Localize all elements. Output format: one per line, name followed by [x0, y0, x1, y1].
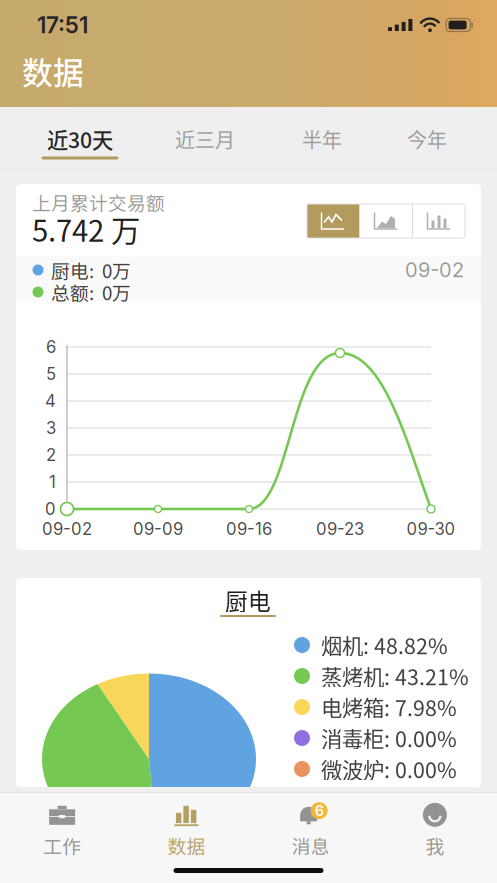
- staticText: 17:51: [37, 11, 88, 39]
- staticText: 电烤箱: 7.98%: [321, 692, 457, 722]
- staticText: 09-02: [405, 258, 464, 282]
- staticText: 消息: [292, 832, 330, 859]
- button[interactable]: Area chart: [360, 204, 412, 238]
- staticText: 总额: 0万: [51, 278, 131, 305]
- button[interactable]: 6: [248, 802, 373, 859]
- staticText: 微波炉: 0.00%: [321, 754, 457, 784]
- staticText: 半年: [302, 124, 342, 153]
- button[interactable]: 工作: [0, 802, 124, 859]
- staticText: 6: [46, 337, 56, 357]
- staticText: 数据: [167, 832, 205, 859]
- button[interactable]: Line chart: [307, 204, 359, 238]
- staticText: 上月累计交易额: [32, 188, 165, 215]
- staticText: 09-09: [133, 519, 183, 539]
- staticText: 2: [46, 445, 56, 465]
- staticText: 4: [45, 391, 56, 411]
- staticText: 今年: [407, 124, 447, 153]
- staticText: 09-30: [406, 519, 455, 539]
- staticText: 09-23: [316, 519, 364, 539]
- staticText: 厨电: [225, 584, 271, 616]
- staticText: 烟机: 48.82%: [321, 630, 448, 660]
- button[interactable]: 今年: [372, 107, 482, 170]
- staticText: 1: [49, 472, 56, 492]
- staticText: 09-16: [226, 519, 272, 539]
- button[interactable]: 近30天: [25, 107, 135, 170]
- staticText: 6: [315, 802, 324, 819]
- button[interactable]: 数据: [124, 802, 248, 859]
- button[interactable]: 我: [373, 802, 497, 859]
- staticText: 近三月: [175, 124, 235, 153]
- staticText: 3: [46, 418, 56, 438]
- staticText: 蒸烤机: 43.21%: [321, 661, 469, 691]
- staticText: 近30天: [47, 124, 113, 154]
- staticText: 09-02: [42, 519, 92, 539]
- staticText: 我: [425, 832, 444, 859]
- staticText: 厨电: 0万: [51, 256, 131, 283]
- staticText: 消毒柜: 0.00%: [321, 723, 457, 753]
- staticText: 数据: [22, 49, 84, 93]
- button[interactable]: Bar chart: [413, 204, 465, 238]
- staticText: 5.742 万: [32, 208, 140, 250]
- button[interactable]: 近三月: [150, 107, 260, 170]
- staticText: 工作: [43, 832, 81, 859]
- button[interactable]: 半年: [267, 107, 377, 170]
- staticText: 5: [46, 364, 56, 384]
- staticText: 0: [45, 499, 56, 519]
